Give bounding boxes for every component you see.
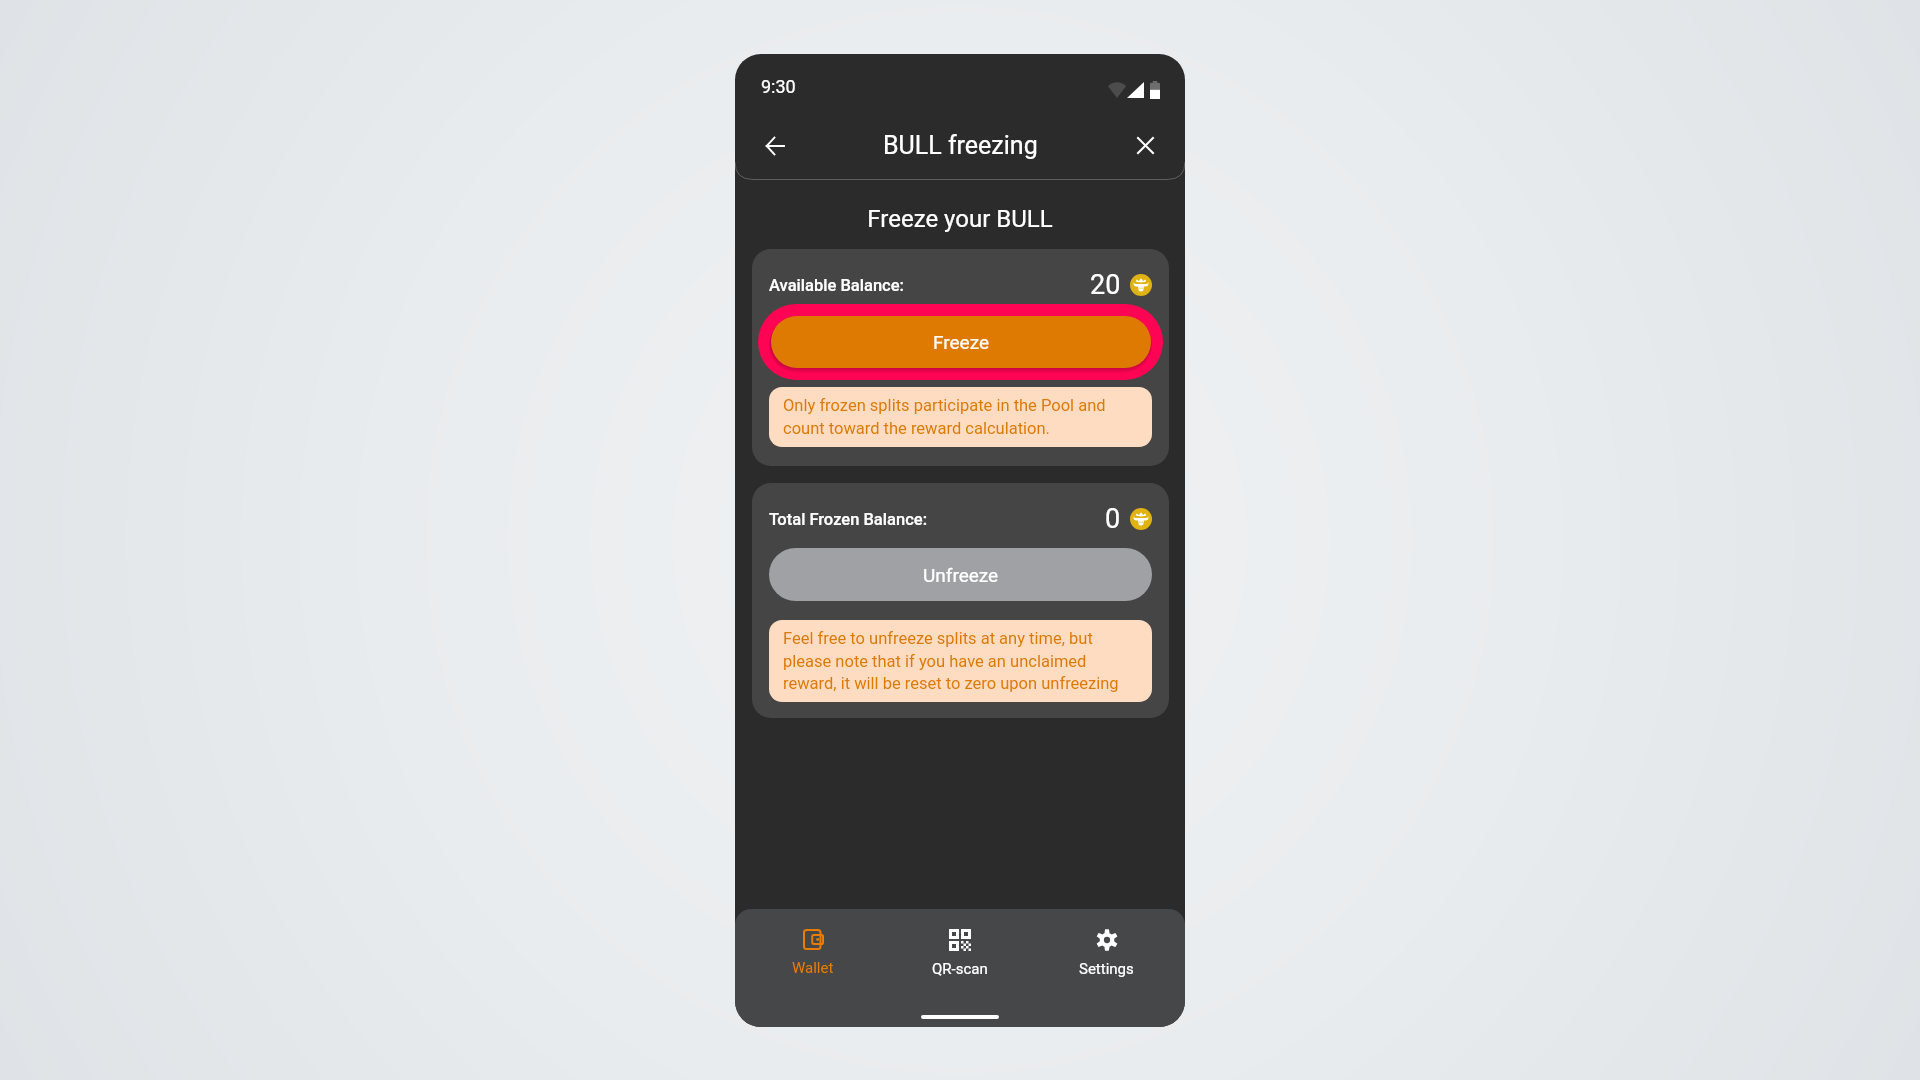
staticText: 0	[1105, 503, 1121, 535]
staticText: Available Balance:	[769, 276, 904, 295]
staticText: Feel free to unfreeze splits at any time…	[783, 629, 1138, 693]
button[interactable]: Freeze	[771, 316, 1151, 368]
staticText: Unfreeze	[923, 564, 999, 586]
button[interactable]: Unfreeze	[769, 548, 1152, 601]
staticText: 20	[1090, 269, 1121, 301]
staticText: BULL freezing	[883, 131, 1038, 160]
button[interactable]: Back	[753, 124, 796, 167]
staticText: Only frozen splits participate in the Po…	[783, 396, 1138, 438]
button[interactable]: QR-scan	[886, 917, 1033, 990]
staticText: Settings	[1079, 960, 1134, 978]
staticText: Total Frozen Balance:	[769, 510, 928, 529]
staticText: Wallet	[792, 959, 834, 977]
staticText: Freeze your BULL	[735, 205, 1185, 233]
staticText: Freeze	[933, 331, 990, 353]
button[interactable]: Close	[1124, 124, 1167, 167]
staticText: 9:30	[761, 76, 796, 97]
button[interactable]: Wallet	[740, 917, 886, 989]
staticText: QR-scan	[932, 960, 988, 978]
button[interactable]: Settings	[1033, 917, 1180, 990]
